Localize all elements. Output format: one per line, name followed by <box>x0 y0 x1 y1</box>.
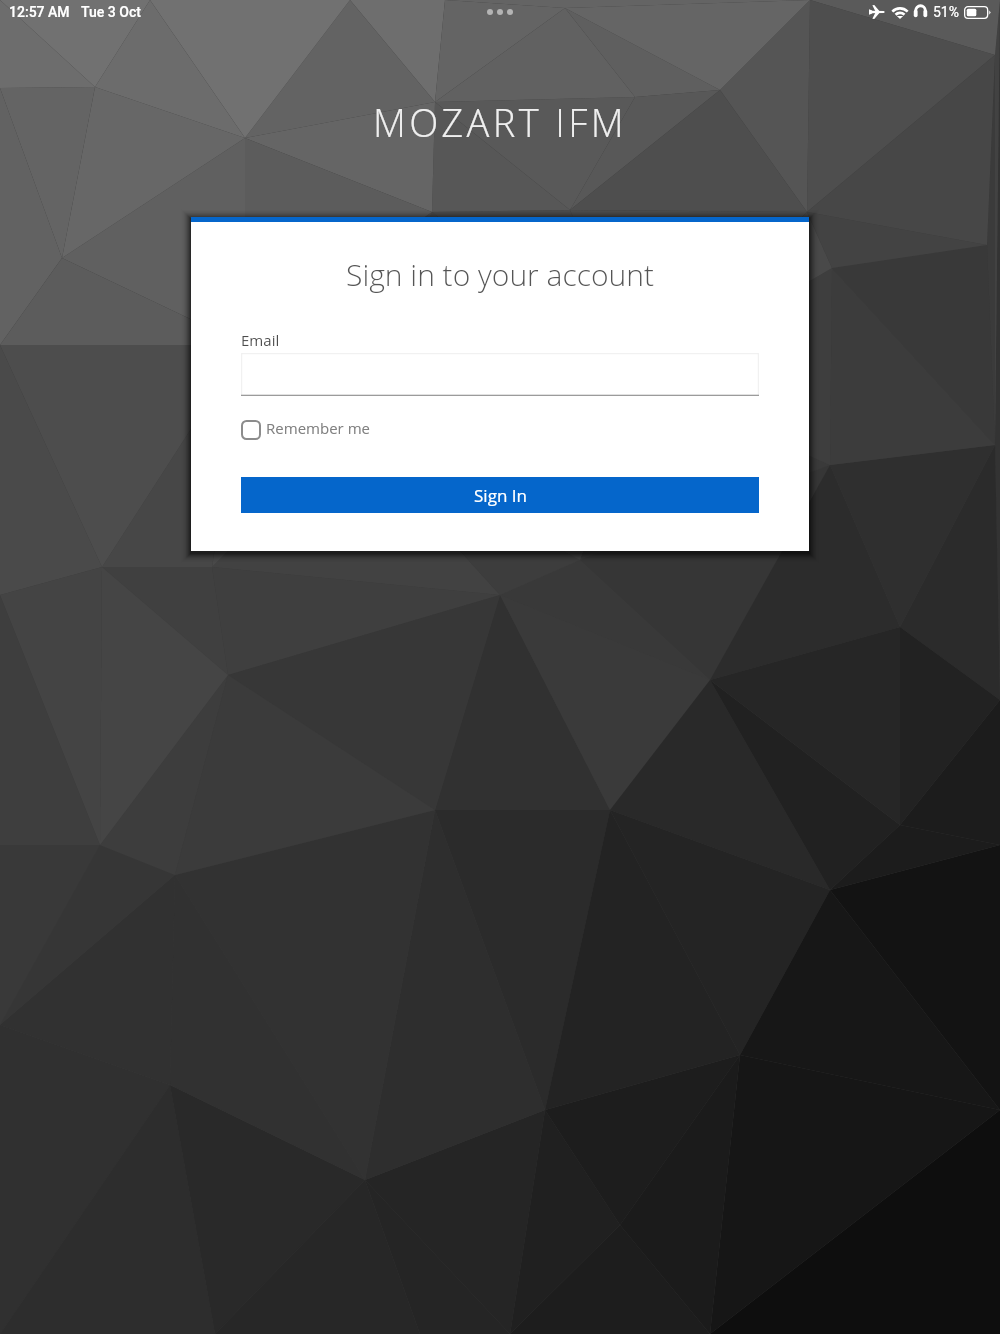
staticText: Email <box>241 330 280 350</box>
staticText: 51% <box>933 4 959 20</box>
staticText: Sign in to your account <box>191 254 809 295</box>
staticText: MOZART IFM <box>0 96 1000 148</box>
staticText: 12:57 AM <box>9 4 70 20</box>
staticText: Tue 3 Oct <box>81 4 141 20</box>
other: Wi-Fi connected <box>891 5 909 19</box>
other: Headphones connected <box>914 5 927 19</box>
staticText: Remember me <box>266 418 371 438</box>
button[interactable]: Email input field <box>241 353 759 396</box>
other: Battery 51 percent <box>964 6 991 19</box>
staticText: Sign In <box>474 484 527 507</box>
button[interactable]: Remember me <box>241 420 371 440</box>
other: Airplane mode on <box>869 5 885 19</box>
button[interactable]: Sign In <box>241 477 759 513</box>
